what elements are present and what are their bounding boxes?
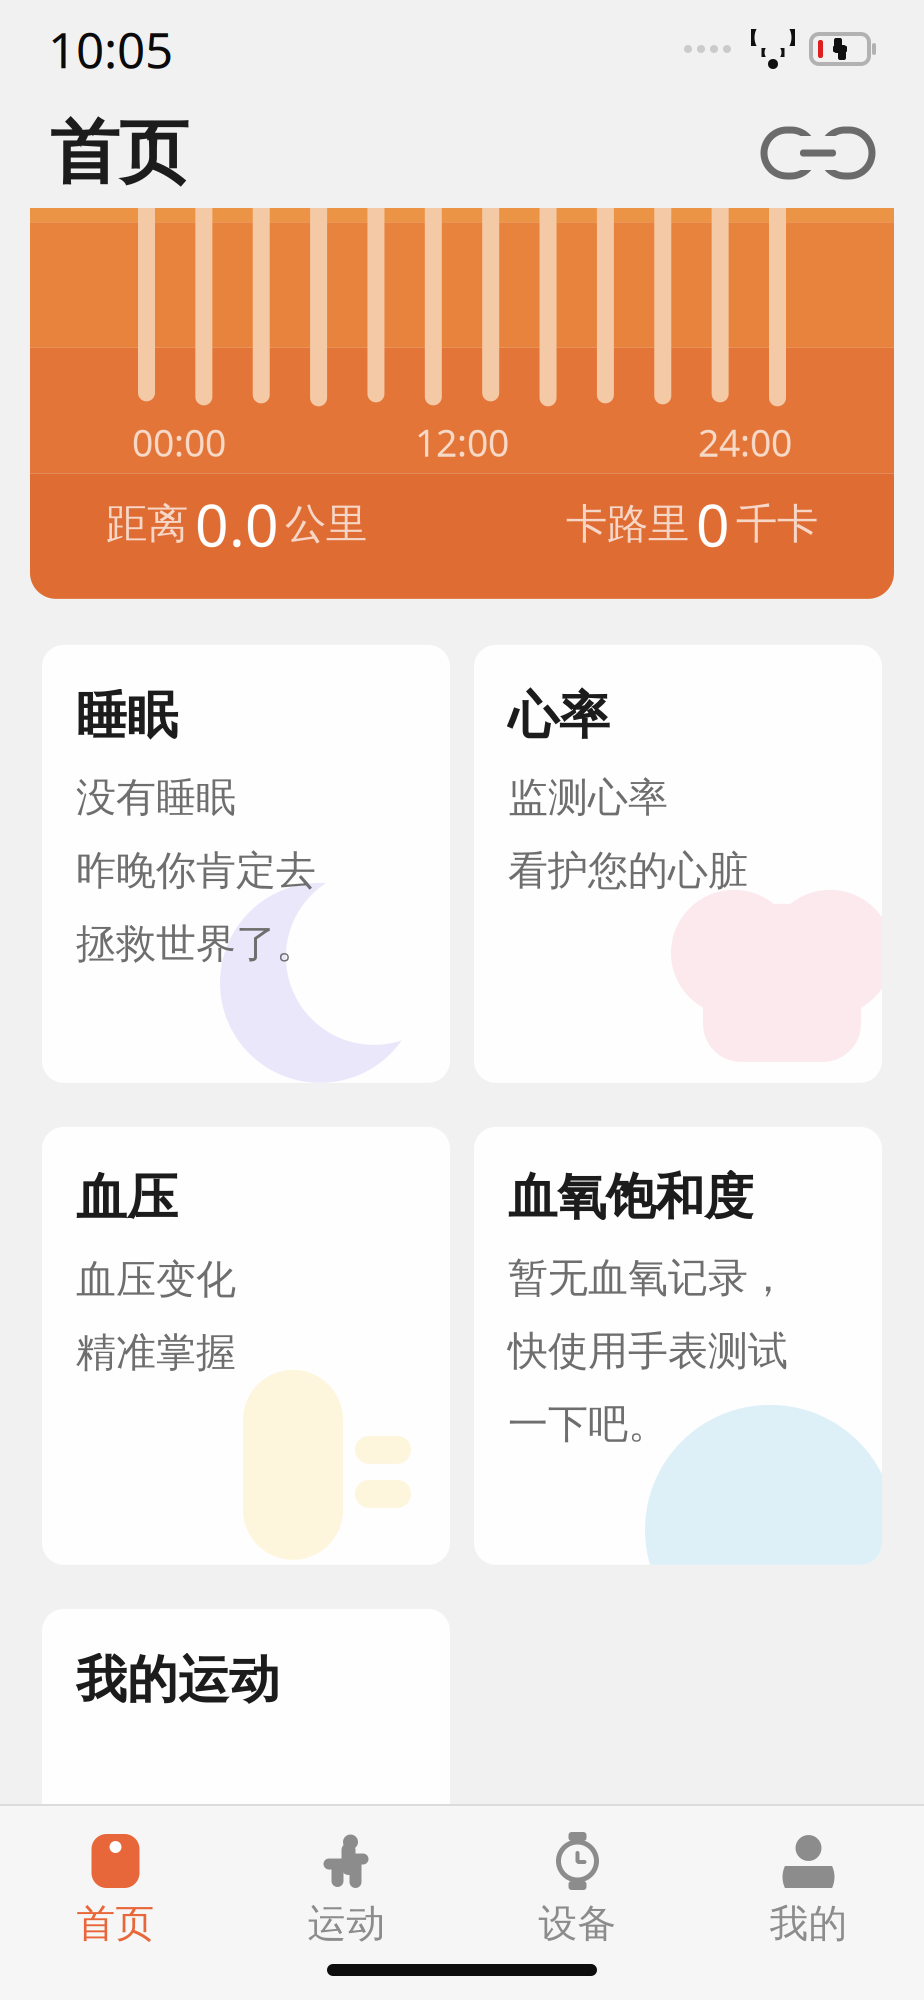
staticText: 精准掌握 xyxy=(76,1328,236,1377)
button[interactable]: 0 xyxy=(30,0,894,599)
button[interactable]: 运动 xyxy=(231,1828,462,1953)
staticText: 公里 xyxy=(285,498,367,549)
staticText: 拯救世界了。 xyxy=(76,919,316,968)
staticText: 运动 xyxy=(307,1900,385,1947)
button[interactable]: 睡眠 xyxy=(42,645,450,1083)
button[interactable]: 我的 xyxy=(693,1828,924,1953)
staticText: 设备 xyxy=(538,1900,616,1947)
staticText: 一下吧。 xyxy=(508,1400,668,1449)
button[interactable]: 我的运动 xyxy=(42,1609,450,2000)
staticText: 12:00 xyxy=(415,417,509,467)
button[interactable]: 首页 xyxy=(0,1828,231,1953)
staticText: 暂无血氧记录， xyxy=(508,1253,788,1303)
staticText: 没有睡眠 xyxy=(76,773,236,822)
staticText: 首页 xyxy=(50,110,188,196)
button[interactable]: 血氧饱和度 xyxy=(474,1127,882,1565)
staticText: 昨晚你肯定去 xyxy=(76,846,316,895)
button[interactable]: Connect device xyxy=(762,125,874,181)
staticText: 首页 xyxy=(76,1900,154,1947)
staticText: 心率 xyxy=(508,685,610,747)
staticText: 00:00 xyxy=(132,417,226,467)
staticText: 10:05 xyxy=(48,16,173,82)
staticText: 血压变化 xyxy=(76,1255,236,1304)
staticText: 0 xyxy=(696,485,730,563)
button[interactable]: 设备 xyxy=(462,1828,693,1953)
button[interactable]: 心率 xyxy=(474,645,882,1083)
staticText: 血氧饱和度 xyxy=(508,1167,753,1227)
staticText: 血压 xyxy=(76,1167,178,1229)
staticText: 卡路里 xyxy=(566,498,689,549)
staticText: 睡眠 xyxy=(76,685,178,747)
staticText: 0.0 xyxy=(195,485,279,563)
staticText: 看护您的心脏 xyxy=(508,846,748,895)
button[interactable]: 血压 xyxy=(42,1127,450,1565)
staticText: 距离 xyxy=(106,498,188,549)
staticText: 我的 xyxy=(769,1900,847,1947)
staticText: 快使用手表测试 xyxy=(508,1327,788,1376)
staticText: 24:00 xyxy=(698,417,792,467)
staticText: 我的运动 xyxy=(76,1649,280,1711)
staticText: 千卡 xyxy=(736,498,818,549)
staticText: 监测心率 xyxy=(508,773,668,822)
